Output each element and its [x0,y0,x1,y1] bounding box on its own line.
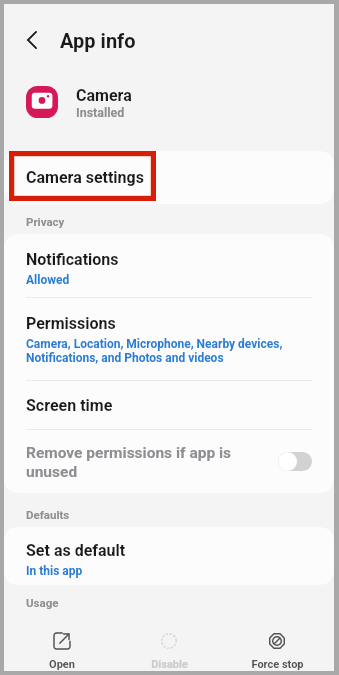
staticText: Allowed [26,273,70,287]
staticText: Open [49,658,75,671]
button[interactable]: Screen time [4,381,334,429]
staticText: Disable [151,658,188,671]
staticText: App info [60,29,136,52]
staticText: Usage [26,596,59,609]
staticText: Notifications [26,250,119,269]
staticText: Remove permissions if app is unused [26,444,268,480]
button[interactable]: Set as default [4,527,334,585]
button[interactable]: Notifications [4,234,334,297]
button[interactable]: Disable [119,622,219,671]
button[interactable]: Force stop [227,622,327,671]
button[interactable]: Back [10,23,54,57]
staticText: In this app [26,564,83,578]
staticText: Force stop [251,658,304,671]
staticText: Privacy [26,215,65,228]
staticText: Camera settings [26,168,144,187]
staticText: Camera, Location, Microphone, Nearby dev… [26,337,283,365]
staticText: Screen time [26,396,113,415]
staticText: Set as default [26,541,126,560]
button[interactable]: Toggle remove permissions if app is unus… [278,452,312,471]
button[interactable]: Open [12,622,112,671]
button[interactable]: Permissions [4,298,334,380]
button[interactable]: Camera settings [4,151,334,204]
button[interactable]: Remove permissions if app is unused [4,430,334,493]
staticText: Camera [76,86,132,105]
staticText: Permissions [26,314,116,333]
staticText: Defaults [26,508,70,521]
staticText: Installed [76,105,125,118]
